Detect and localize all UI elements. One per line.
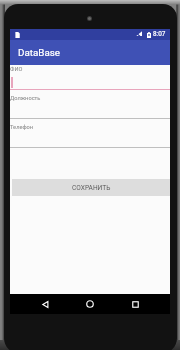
staticText: Должность	[10, 95, 41, 102]
staticText: СОХРАНИТЬ	[72, 184, 111, 192]
staticText: DataBase	[18, 47, 60, 58]
button[interactable]: Home	[76, 294, 104, 314]
button[interactable]: СОХРАНИТЬ	[12, 179, 170, 196]
button[interactable]: Back	[31, 294, 59, 314]
button[interactable]: Recents	[121, 294, 149, 314]
staticText: 8:07	[153, 30, 166, 38]
staticText: Телефон	[10, 124, 34, 131]
staticText: ФИО	[10, 66, 23, 73]
